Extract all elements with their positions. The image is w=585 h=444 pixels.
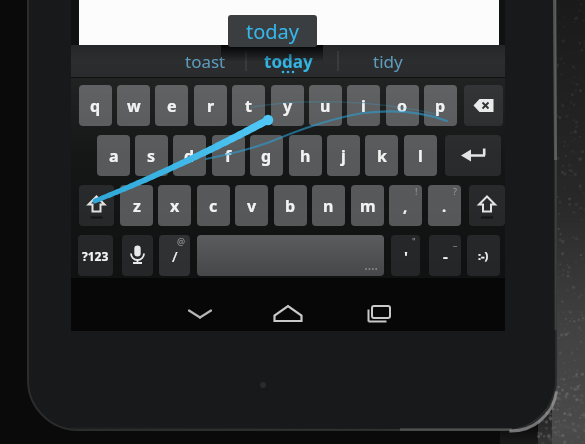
button[interactable]: . bbox=[428, 185, 461, 226]
button[interactable]: v bbox=[235, 185, 268, 226]
button[interactable]: i bbox=[347, 85, 380, 126]
button[interactable]: / bbox=[159, 235, 190, 276]
button[interactable]: y bbox=[271, 85, 304, 126]
button[interactable]: n bbox=[312, 185, 345, 226]
button[interactable]: f bbox=[212, 135, 245, 176]
button[interactable]: o bbox=[386, 85, 419, 126]
staticText: g bbox=[261, 145, 272, 167]
staticText: d bbox=[184, 145, 195, 167]
button[interactable]: s bbox=[135, 135, 168, 176]
button[interactable] bbox=[197, 235, 384, 276]
button[interactable]: w bbox=[117, 85, 150, 126]
button[interactable]: p bbox=[424, 85, 457, 126]
button[interactable] bbox=[266, 297, 310, 329]
staticText: a bbox=[109, 145, 119, 167]
button[interactable]: today bbox=[248, 47, 328, 75]
button[interactable]: t bbox=[232, 85, 265, 126]
staticText: @ bbox=[177, 235, 186, 247]
button[interactable]: a bbox=[97, 135, 130, 176]
staticText: ?123 bbox=[82, 248, 109, 264]
staticText: . bbox=[442, 196, 447, 216]
button[interactable]: c bbox=[197, 185, 230, 226]
button[interactable]: r bbox=[194, 85, 227, 126]
staticText: i bbox=[361, 95, 366, 117]
staticText: l bbox=[418, 145, 423, 167]
staticText: r bbox=[207, 95, 215, 117]
button[interactable]: l bbox=[404, 135, 437, 176]
staticText: b bbox=[285, 195, 296, 217]
button[interactable]: d bbox=[173, 135, 206, 176]
button[interactable]: :-) bbox=[467, 235, 500, 276]
staticText: w bbox=[127, 95, 141, 117]
button[interactable]: x bbox=[158, 185, 191, 226]
button[interactable] bbox=[445, 135, 501, 176]
button[interactable]: ?123 bbox=[78, 235, 113, 276]
button[interactable]: u bbox=[309, 85, 342, 126]
button[interactable]: - bbox=[429, 235, 461, 276]
staticText: v bbox=[247, 195, 257, 217]
button[interactable]: toast bbox=[165, 47, 245, 75]
staticText: ! bbox=[415, 185, 418, 197]
button[interactable]: z bbox=[120, 185, 153, 226]
staticText: :-) bbox=[478, 248, 489, 263]
button[interactable]: g bbox=[250, 135, 283, 176]
staticText: today bbox=[264, 50, 313, 73]
staticText: toast bbox=[185, 50, 226, 73]
staticText: t bbox=[245, 95, 252, 117]
staticText: u bbox=[320, 95, 331, 117]
button[interactable]: today bbox=[228, 15, 317, 47]
staticText: _ bbox=[453, 235, 457, 247]
staticText: / bbox=[172, 246, 178, 266]
button[interactable]: j bbox=[327, 135, 360, 176]
staticText: m bbox=[360, 195, 376, 217]
staticText: n bbox=[323, 195, 334, 217]
button[interactable] bbox=[359, 297, 403, 329]
staticText: f bbox=[225, 145, 232, 167]
staticText: , bbox=[403, 196, 408, 216]
button[interactable]: k bbox=[365, 135, 398, 176]
staticText: q bbox=[90, 95, 101, 117]
staticText: h bbox=[300, 145, 311, 167]
staticText: x bbox=[170, 195, 180, 217]
button[interactable]: e bbox=[155, 85, 188, 126]
staticText: k bbox=[377, 145, 387, 167]
button[interactable]: , bbox=[389, 185, 422, 226]
staticText: z bbox=[133, 195, 141, 217]
staticText: ' bbox=[404, 246, 408, 266]
staticText: j bbox=[341, 145, 346, 167]
staticText: c bbox=[209, 195, 218, 217]
staticText: " bbox=[412, 235, 416, 247]
button[interactable]: h bbox=[289, 135, 322, 176]
staticText: today bbox=[246, 18, 300, 45]
staticText: tidy bbox=[373, 50, 403, 73]
button[interactable] bbox=[469, 185, 505, 226]
button[interactable] bbox=[178, 298, 222, 330]
staticText: - bbox=[443, 246, 448, 266]
button[interactable]: q bbox=[79, 85, 112, 126]
button[interactable]: tidy bbox=[348, 47, 428, 75]
staticText: s bbox=[147, 145, 156, 167]
button[interactable]: ' bbox=[391, 235, 420, 276]
button[interactable] bbox=[122, 235, 153, 276]
staticText: o bbox=[397, 95, 408, 117]
button[interactable] bbox=[79, 185, 114, 226]
staticText: e bbox=[167, 95, 177, 117]
button[interactable]: m bbox=[351, 185, 384, 226]
button[interactable]: b bbox=[274, 185, 307, 226]
staticText: p bbox=[435, 95, 446, 117]
staticText: y bbox=[283, 95, 293, 117]
button[interactable] bbox=[464, 85, 503, 126]
staticText: ? bbox=[453, 185, 457, 197]
